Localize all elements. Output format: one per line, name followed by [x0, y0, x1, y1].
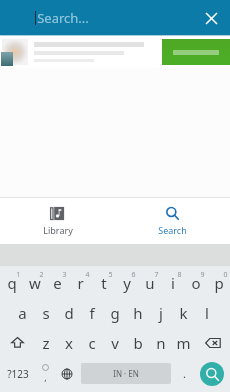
staticText: a	[18, 303, 27, 323]
button[interactable]: ?123	[0, 359, 35, 388]
button[interactable]: o	[184, 269, 207, 296]
staticText: y	[123, 273, 131, 293]
staticText: Library	[43, 224, 73, 236]
staticText: n	[156, 333, 166, 353]
staticText: e	[53, 273, 62, 293]
button[interactable]: Change language	[55, 359, 78, 388]
staticText: j	[159, 303, 163, 323]
staticText: l	[205, 303, 209, 323]
button[interactable]: Search...	[37, 0, 187, 35]
button[interactable]: Backspace	[195, 329, 230, 356]
staticText: 4	[85, 270, 90, 280]
staticText: ,	[44, 371, 47, 383]
button[interactable]: h	[126, 299, 149, 326]
button[interactable]: u	[138, 269, 161, 296]
staticText: Search	[158, 224, 187, 236]
button[interactable]: c	[80, 329, 103, 356]
button[interactable]: a	[11, 299, 34, 326]
staticText: 2	[39, 270, 44, 280]
button[interactable]: Advertisement	[0, 35, 230, 68]
button[interactable]: v	[103, 329, 126, 356]
staticText: q	[7, 273, 17, 293]
staticText: z	[42, 333, 50, 353]
button[interactable]: l	[195, 299, 218, 326]
button[interactable]: x	[57, 329, 80, 356]
button[interactable]: .	[174, 359, 194, 388]
staticText: s	[42, 303, 50, 323]
button[interactable]: Search	[115, 198, 230, 244]
button[interactable]: b	[126, 329, 149, 356]
button[interactable]: z	[34, 329, 57, 356]
button[interactable]: Library	[0, 198, 115, 244]
staticText: 3	[62, 270, 67, 280]
button[interactable]: r	[69, 269, 92, 296]
staticText: 1	[16, 270, 21, 280]
staticText: 0	[223, 270, 228, 280]
button[interactable]: m	[172, 329, 195, 356]
button[interactable]: i	[161, 269, 184, 296]
button[interactable]: p	[207, 269, 230, 296]
button[interactable]: e	[46, 269, 69, 296]
button[interactable]: n	[149, 329, 172, 356]
staticText: g	[110, 303, 120, 323]
button[interactable]: w	[23, 269, 46, 296]
staticText: v	[111, 333, 119, 353]
button[interactable]: j	[149, 299, 172, 326]
staticText: b	[133, 333, 143, 353]
button[interactable]: f	[80, 299, 103, 326]
button[interactable]: IN · EN	[81, 363, 171, 384]
staticText: k	[179, 303, 188, 323]
button[interactable]: g	[103, 299, 126, 326]
button[interactable]: Emoji and comma	[35, 359, 55, 388]
staticText: .	[183, 366, 186, 381]
staticText: x	[65, 333, 73, 353]
staticText: c	[88, 333, 96, 353]
staticText: f	[89, 303, 95, 323]
button[interactable]: t	[92, 269, 115, 296]
button[interactable]: Search	[200, 362, 224, 386]
staticText: o	[191, 273, 201, 293]
button[interactable]: s	[34, 299, 57, 326]
staticText: t	[101, 273, 107, 293]
staticText: 9	[200, 270, 205, 280]
staticText: 5	[108, 270, 113, 280]
button[interactable]: Install	[162, 39, 230, 65]
staticText: ?123	[7, 367, 29, 381]
staticText: h	[133, 303, 143, 323]
staticText: d	[64, 303, 74, 323]
button[interactable]: d	[57, 299, 80, 326]
button[interactable]: y	[115, 269, 138, 296]
button[interactable]: k	[172, 299, 195, 326]
staticText: 6	[131, 270, 136, 280]
staticText: m	[176, 333, 191, 353]
staticText: Search...	[37, 9, 89, 27]
staticText: 8	[177, 270, 182, 280]
button[interactable]: q	[0, 269, 23, 296]
button[interactable]: Shift	[0, 329, 34, 356]
staticText: IN · EN	[113, 368, 139, 379]
staticText: w	[29, 273, 41, 293]
staticText: r	[77, 273, 84, 293]
staticText: p	[214, 273, 224, 293]
staticText: u	[145, 273, 155, 293]
staticText: 7	[154, 270, 159, 280]
button[interactable]: Close search	[198, 5, 224, 31]
staticText: i	[171, 273, 175, 293]
